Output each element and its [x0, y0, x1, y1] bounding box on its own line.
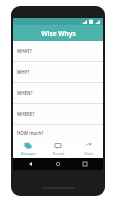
- button[interactable]: WHEN?: [13, 83, 103, 103]
- staticText: Share: [84, 152, 93, 156]
- button[interactable]: Home: [49, 158, 67, 170]
- staticText: Messages: [21, 152, 36, 156]
- staticText: WHERE?: [17, 111, 35, 117]
- staticText: HOW much?: [17, 130, 44, 136]
- staticText: Threads: [52, 152, 65, 156]
- button[interactable]: Messages: [13, 140, 43, 158]
- button[interactable]: HOW much?: [13, 125, 103, 140]
- staticText: WHEN?: [17, 90, 33, 96]
- staticText: WHY?: [17, 69, 30, 75]
- button[interactable]: WHERE?: [13, 104, 103, 124]
- button[interactable]: Threads: [43, 140, 73, 158]
- button[interactable]: WHY?: [13, 62, 103, 82]
- staticText: WHAT?: [17, 48, 32, 54]
- button[interactable]: WHAT?: [13, 41, 103, 61]
- staticText: Wise Whys: [41, 29, 76, 38]
- button[interactable]: Back: [22, 158, 40, 170]
- button[interactable]: Recents: [76, 158, 94, 170]
- button[interactable]: Share: [73, 140, 103, 158]
